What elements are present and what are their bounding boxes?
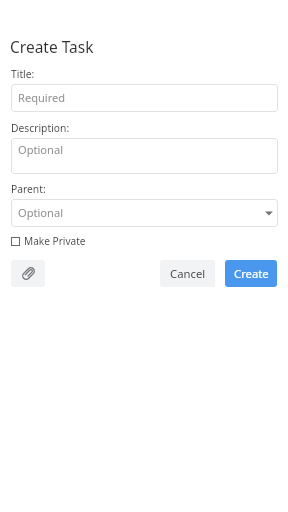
staticText: Parent: [11, 182, 46, 196]
staticText: Optional [18, 205, 64, 220]
button[interactable]: Optional [11, 199, 278, 227]
button[interactable]: Make Private [11, 234, 86, 248]
button[interactable]: Attach file [11, 260, 45, 287]
staticText: Make Private [24, 234, 86, 248]
button[interactable]: Cancel [160, 260, 215, 287]
staticText: Create [234, 266, 269, 281]
staticText: Cancel [170, 266, 206, 281]
staticText: Optional [18, 142, 64, 157]
staticText: Create Task [10, 36, 94, 57]
button[interactable]: Required [11, 84, 278, 112]
staticText: Required [18, 90, 66, 105]
staticText: Title: [11, 67, 35, 81]
button[interactable]: Create [225, 260, 277, 287]
button[interactable]: Optional [11, 138, 278, 174]
staticText: Description: [11, 121, 70, 135]
